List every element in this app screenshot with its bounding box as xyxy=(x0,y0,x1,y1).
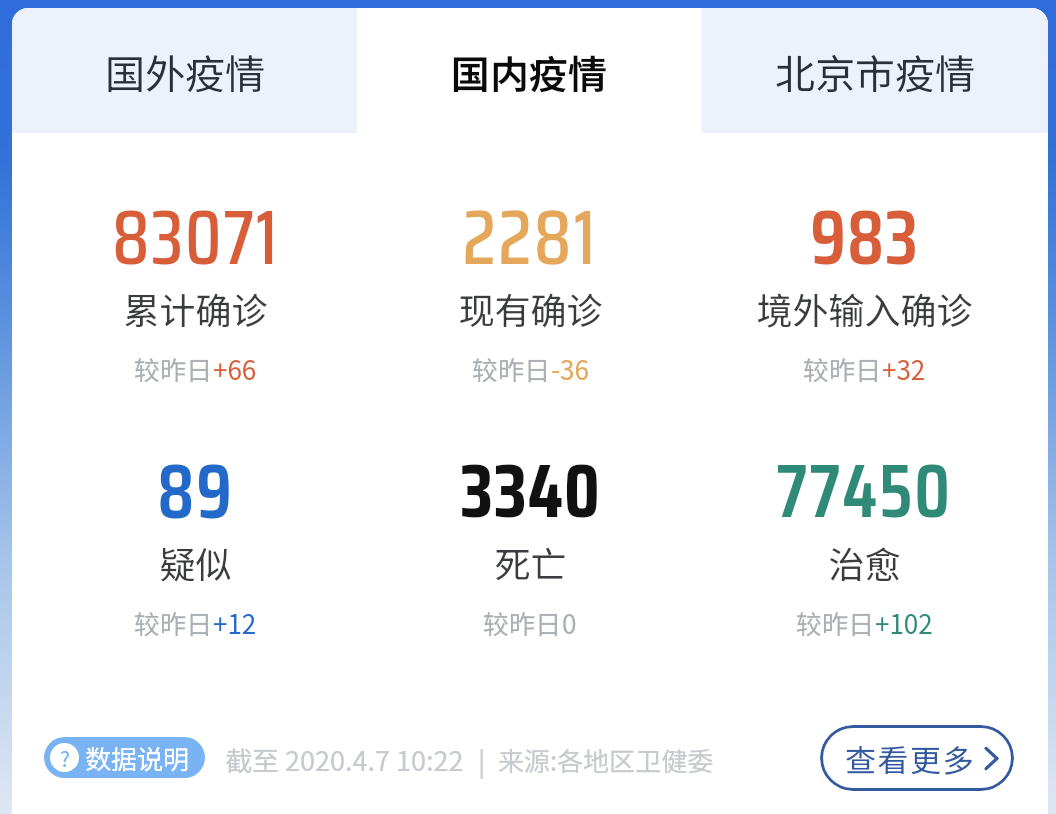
staticText: 来源:各地区卫健委 xyxy=(498,741,714,779)
staticText: 治愈 xyxy=(828,536,901,588)
staticText: 查看更多 xyxy=(845,736,975,781)
staticText: 较昨日 xyxy=(134,350,213,388)
staticText: 北京市疫情 xyxy=(775,43,975,101)
staticText: 现有确诊 xyxy=(458,282,603,334)
staticText: 983 xyxy=(810,178,919,298)
staticText: 国外疫情 xyxy=(105,43,265,101)
staticText: 3340 xyxy=(460,432,601,550)
staticText: +12 xyxy=(213,604,257,642)
button[interactable]: 国外疫情 xyxy=(12,8,357,133)
other: View more xyxy=(985,747,998,770)
staticText: ? xyxy=(60,743,70,772)
staticText: +32 xyxy=(882,350,926,388)
staticText: 疑似 xyxy=(159,536,232,588)
staticText: 数据说明 xyxy=(85,739,190,777)
staticText: 较昨日 xyxy=(803,350,882,388)
button[interactable]: ? xyxy=(44,737,205,778)
staticText: 累计确诊 xyxy=(123,282,268,334)
staticText: 较昨日 xyxy=(796,604,875,642)
staticText: -36 xyxy=(551,350,589,388)
staticText: 83071 xyxy=(112,178,279,298)
staticText: 较昨日 xyxy=(472,350,551,388)
button[interactable]: 北京市疫情 xyxy=(701,8,1048,133)
staticText: 0 xyxy=(562,604,577,642)
button[interactable]: 查看更多 xyxy=(820,725,1014,791)
staticText: | xyxy=(478,740,486,779)
staticText: 2281 xyxy=(462,178,598,298)
staticText: 国内疫情 xyxy=(451,44,608,100)
staticText: 89 xyxy=(157,432,234,552)
staticText: 较昨日 xyxy=(483,604,562,642)
staticText: +66 xyxy=(213,350,257,388)
staticText: 较昨日 xyxy=(134,604,213,642)
staticText: 死亡 xyxy=(494,536,567,588)
staticText: 截至 2020.4.7 10:22 xyxy=(225,740,464,779)
staticText: 境外输入确诊 xyxy=(756,282,973,334)
staticText: 77450 xyxy=(776,432,952,550)
button[interactable]: 国内疫情 xyxy=(357,8,701,133)
staticText: +102 xyxy=(875,604,933,642)
